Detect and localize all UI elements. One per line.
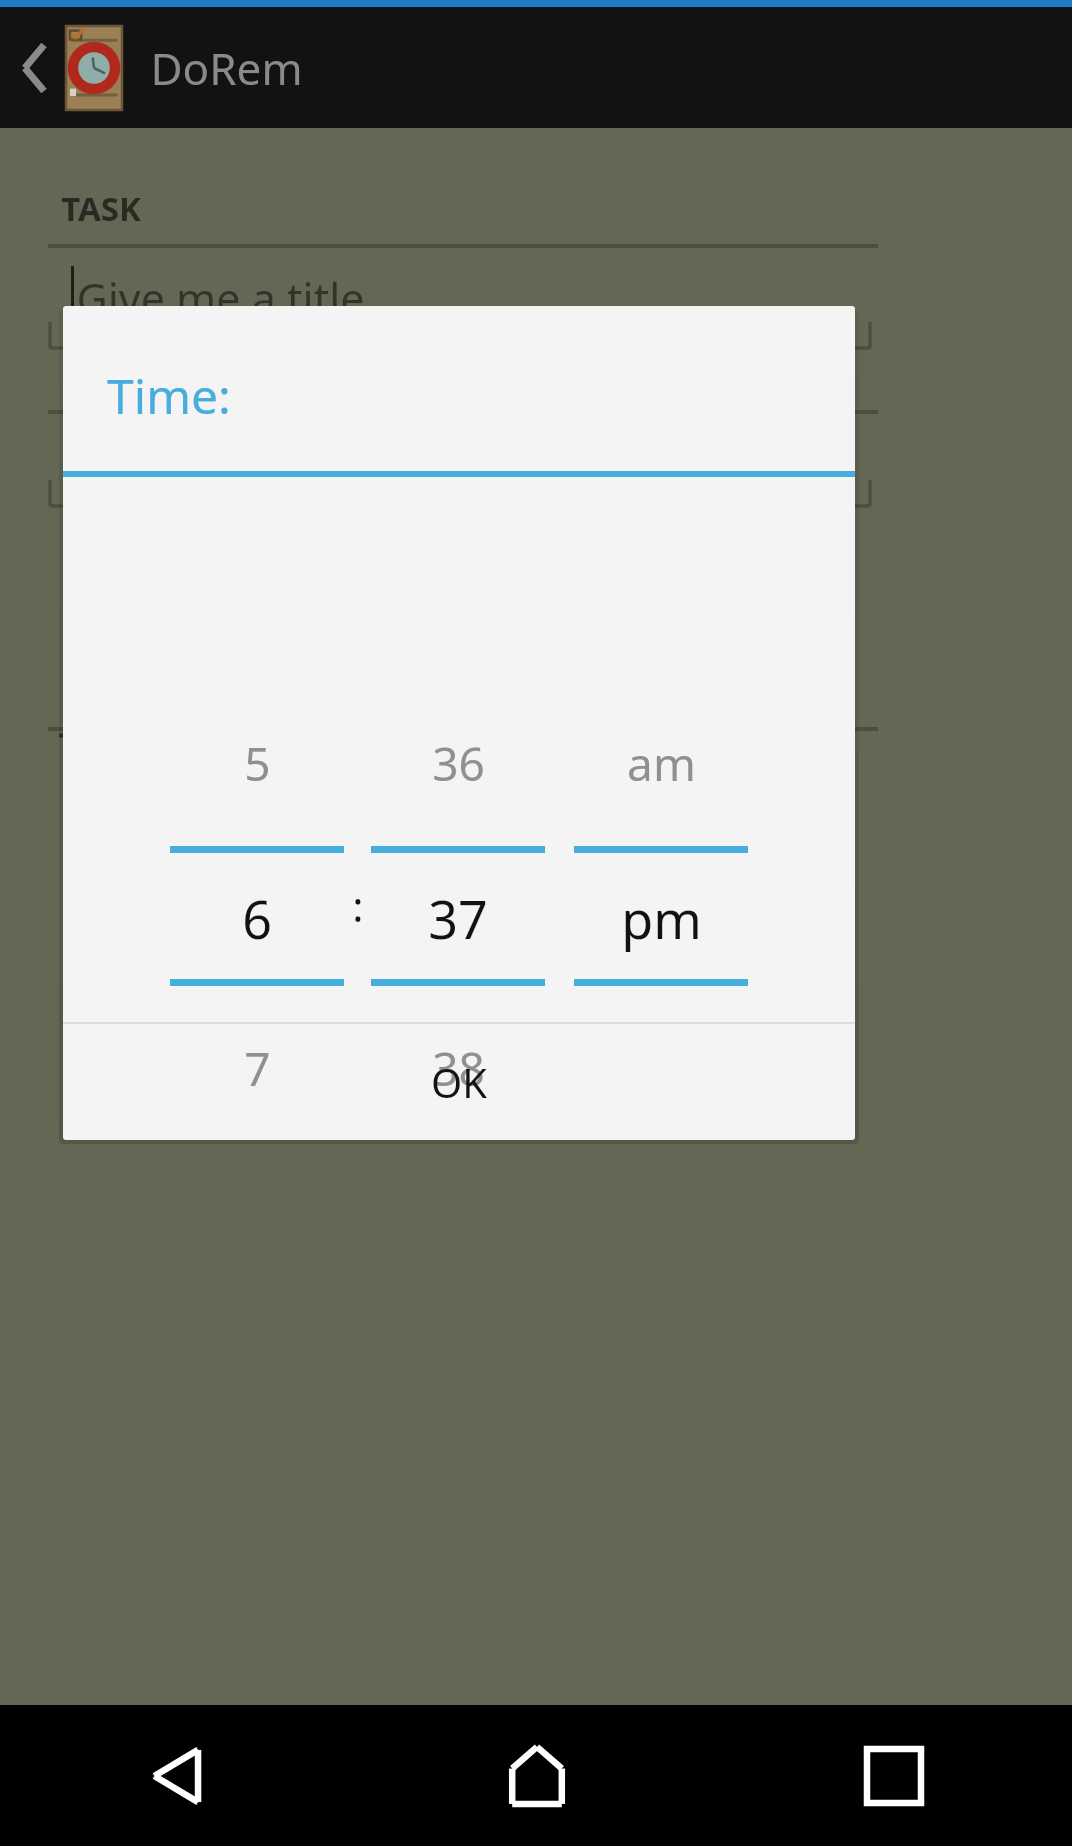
- staticText: 7: [244, 1037, 271, 1100]
- staticText: 5: [244, 732, 271, 795]
- staticText: …: [56, 700, 85, 749]
- staticText: 6: [242, 883, 272, 954]
- staticText: 37: [428, 883, 488, 954]
- staticText: pm: [621, 883, 702, 954]
- staticText: OK: [431, 1055, 487, 1109]
- staticText: Time:: [107, 363, 231, 428]
- button[interactable]: Hour: [162, 477, 352, 1022]
- button[interactable]: AM or PM: [566, 477, 756, 1022]
- button[interactable]: Recent apps: [715, 1705, 1072, 1846]
- button[interactable]: OK: [63, 1024, 855, 1140]
- staticText: 36: [432, 732, 485, 795]
- staticText: Give me a title: [76, 269, 365, 328]
- button[interactable]: Back: [0, 1705, 358, 1846]
- staticText: TASK: [61, 186, 141, 231]
- staticText: :: [352, 877, 364, 934]
- button[interactable]: Minute: [363, 477, 553, 1022]
- staticText: DoRem: [150, 38, 303, 98]
- button[interactable]: Navigate up: [6, 18, 64, 118]
- staticText: am: [627, 732, 696, 795]
- button[interactable]: Home: [358, 1705, 715, 1846]
- staticText: 38: [432, 1037, 485, 1100]
